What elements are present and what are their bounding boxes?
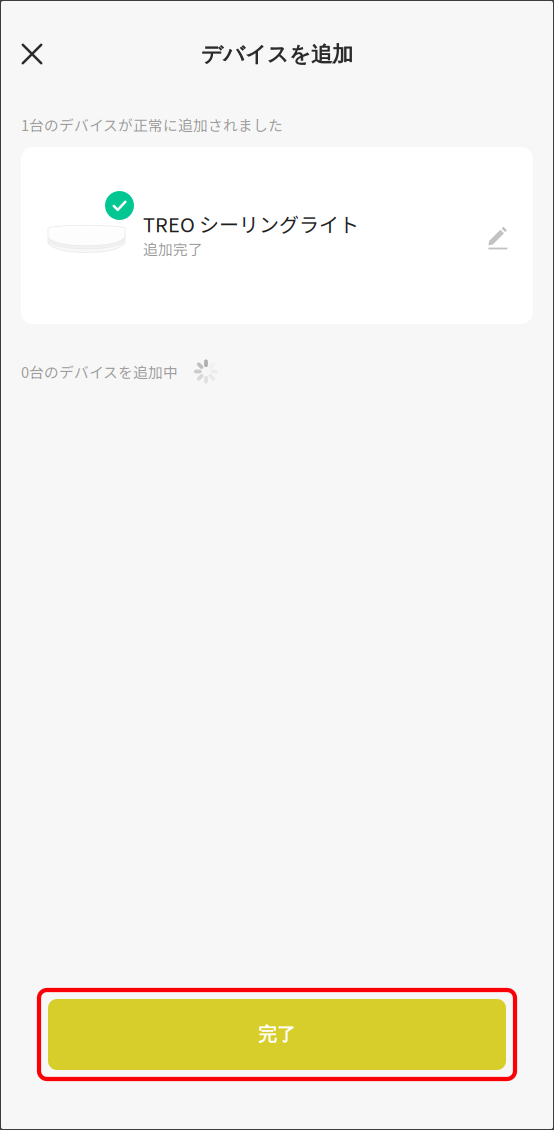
- staticText: 1台のデバイスが正常に追加されました: [21, 114, 283, 135]
- staticText: 完了: [258, 1023, 296, 1046]
- staticText: TREO シーリングライト: [143, 209, 359, 238]
- staticText: 追加完了: [143, 238, 203, 259]
- staticText: デバイスを追加: [201, 41, 353, 68]
- button[interactable]: 完了: [0, 988, 554, 1081]
- button[interactable]: 閉じる: [10, 32, 54, 76]
- button[interactable]: 名前を編集: [476, 216, 520, 260]
- staticText: 0台のデバイスを追加中: [21, 361, 178, 382]
